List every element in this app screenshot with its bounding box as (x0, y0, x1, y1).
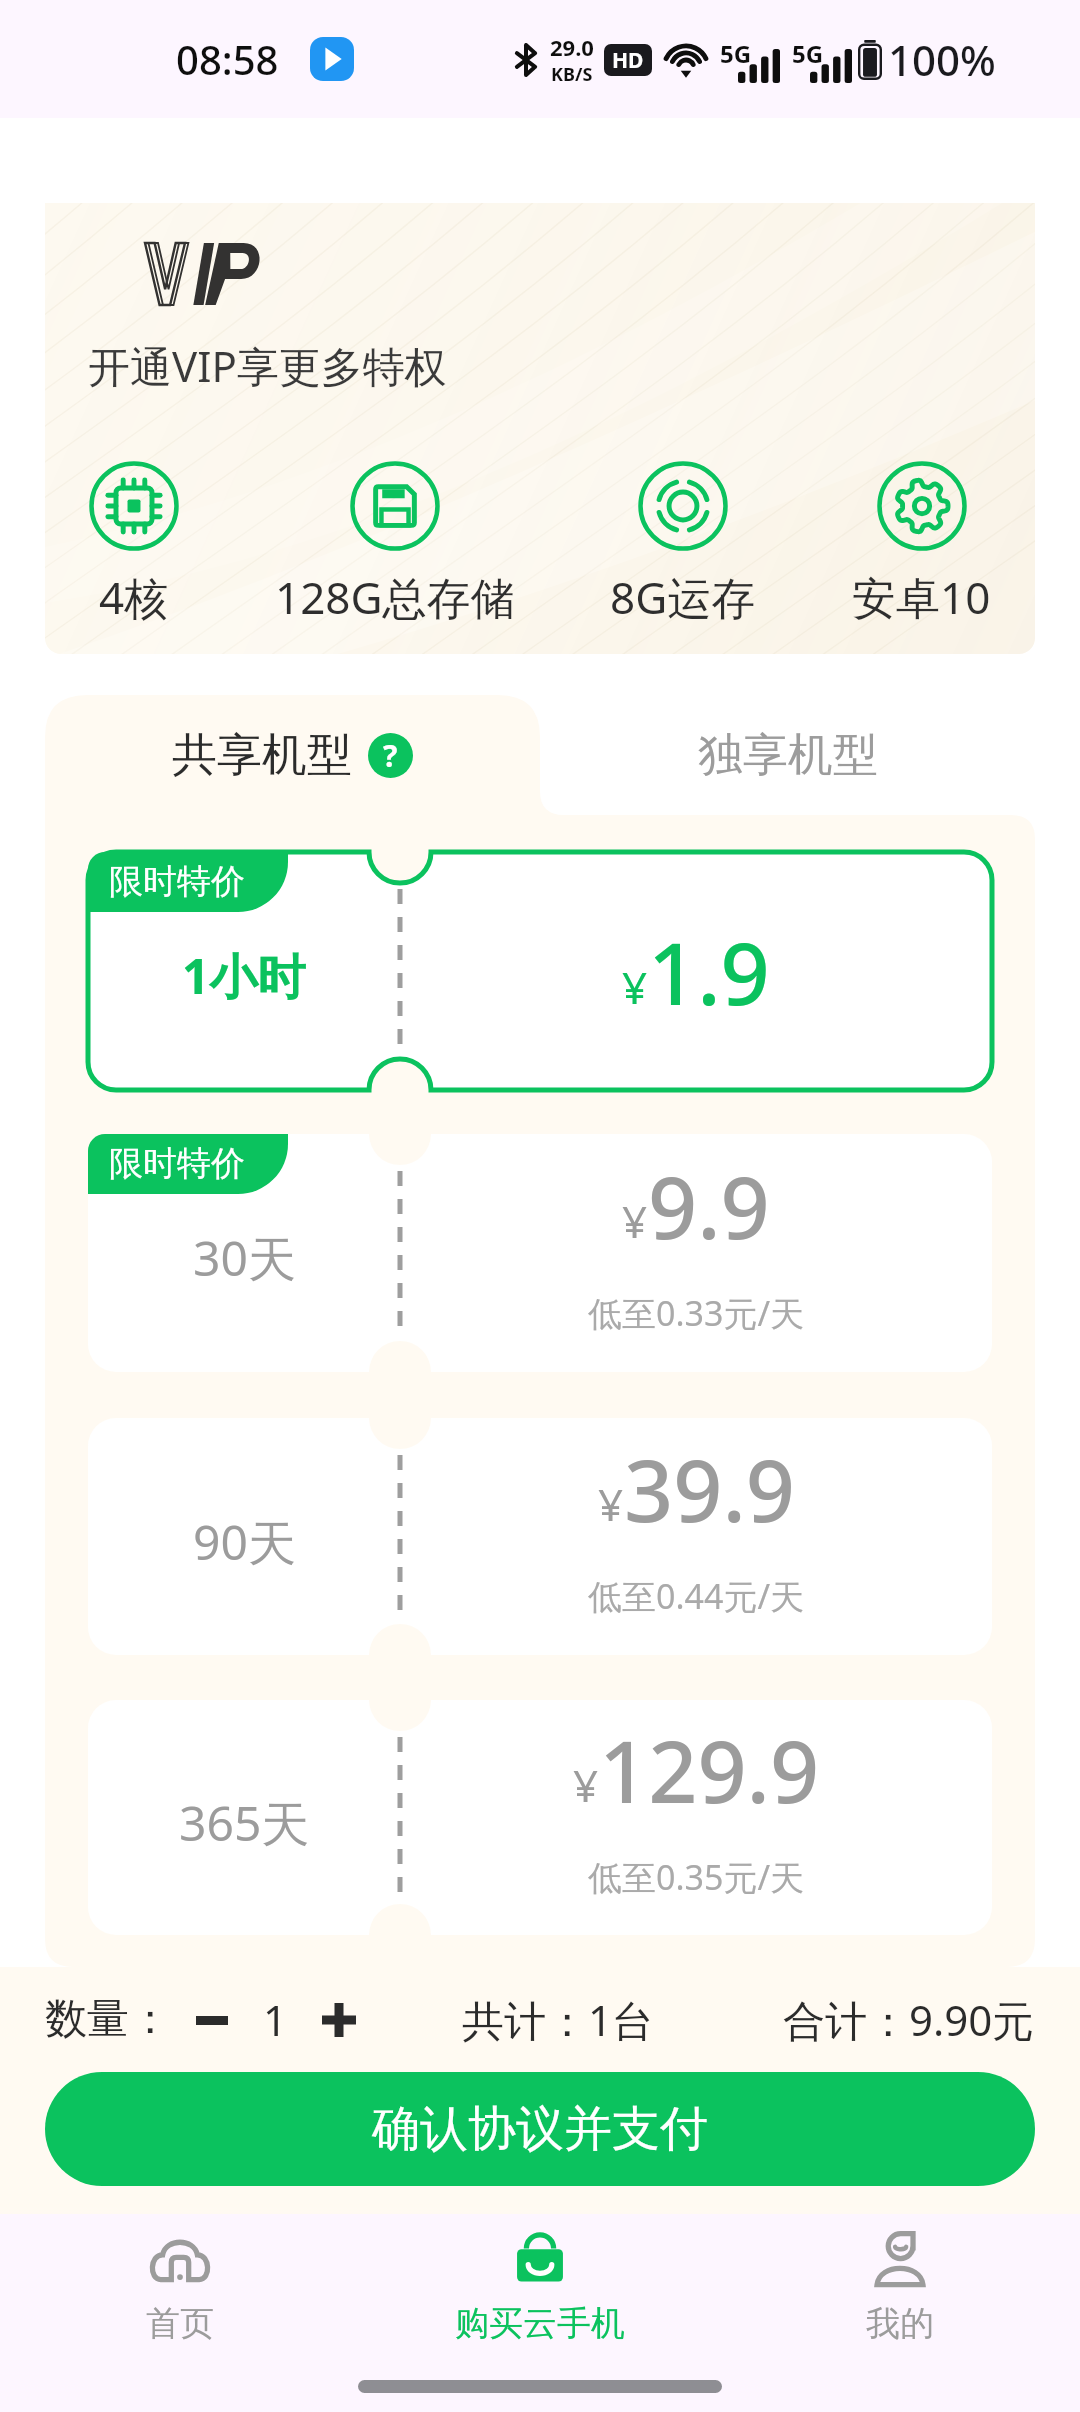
staticText: 8G运存 (610, 567, 756, 627)
button[interactable]: 购买云手机 (360, 2214, 720, 2360)
staticText: 1.9 (648, 913, 770, 1030)
staticText: 30天 (193, 1225, 296, 1291)
staticText: 共计：1台 (462, 1991, 655, 2048)
staticText: 9.9 (648, 1147, 770, 1264)
staticText: 共享机型 (172, 727, 352, 784)
button[interactable]: 确认协议并支付 (45, 2072, 1035, 2186)
staticText: 129.9 (599, 1711, 820, 1828)
staticText: 低至0.35元/天 (588, 1854, 805, 1900)
staticText: 限时特价 (109, 1142, 245, 1185)
staticText: 1 (263, 1991, 288, 2048)
staticText: 5G (720, 37, 752, 70)
staticText: 5G (792, 37, 824, 70)
button[interactable]: Increase quantity (310, 1991, 368, 2049)
staticText: 1小时 (182, 943, 306, 1009)
staticText: 安卓10 (852, 567, 991, 627)
button[interactable]: 首页 (0, 2214, 360, 2360)
staticText: 购买云手机 (455, 2302, 625, 2345)
button[interactable]: Decrease quantity (183, 1991, 241, 2049)
button[interactable]: 限时特价 (88, 852, 992, 1090)
staticText: 低至0.33元/天 (588, 1290, 805, 1336)
staticText: ¥ (622, 957, 648, 1017)
button[interactable]: 365天 (88, 1700, 992, 1935)
staticText: KB/S (551, 62, 593, 87)
staticText: 低至0.44元/天 (588, 1573, 805, 1619)
staticText: 首页 (146, 2302, 214, 2345)
staticText: 我的 (866, 2302, 934, 2345)
button[interactable]: 限时特价 (88, 1134, 992, 1372)
staticText: 39.9 (624, 1430, 795, 1547)
staticText: 确认协议并支付 (372, 2099, 708, 2159)
staticText: 100% (888, 31, 996, 88)
staticText: 29.0 (550, 32, 594, 62)
staticText: ? (383, 735, 398, 776)
button[interactable]: 开通VIP享更多特权 (45, 203, 1035, 654)
staticText: 限时特价 (109, 860, 245, 903)
staticText: ¥ (598, 1474, 624, 1534)
staticText: 数量： (45, 1993, 171, 2046)
staticText: ¥ (573, 1755, 599, 1815)
staticText: HD (612, 46, 644, 75)
staticText: 365天 (179, 1790, 310, 1856)
staticText: 4核 (99, 567, 169, 627)
button[interactable]: 共享机型 (45, 695, 540, 815)
staticText: 独享机型 (698, 727, 878, 784)
staticText: 合计：9.90元 (783, 1991, 1035, 2048)
staticText: 90天 (193, 1509, 296, 1575)
button[interactable]: 90天 (88, 1418, 992, 1655)
button[interactable]: 我的 (720, 2214, 1080, 2360)
staticText: ¥ (622, 1191, 648, 1251)
button[interactable]: 独享机型 (540, 695, 1035, 815)
staticText: 08:58 (176, 32, 279, 86)
staticText: 开通VIP享更多特权 (88, 337, 447, 394)
staticText: 128G总存储 (275, 567, 515, 627)
